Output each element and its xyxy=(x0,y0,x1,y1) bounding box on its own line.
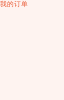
staticText: 我的订单 xyxy=(0,0,28,8)
